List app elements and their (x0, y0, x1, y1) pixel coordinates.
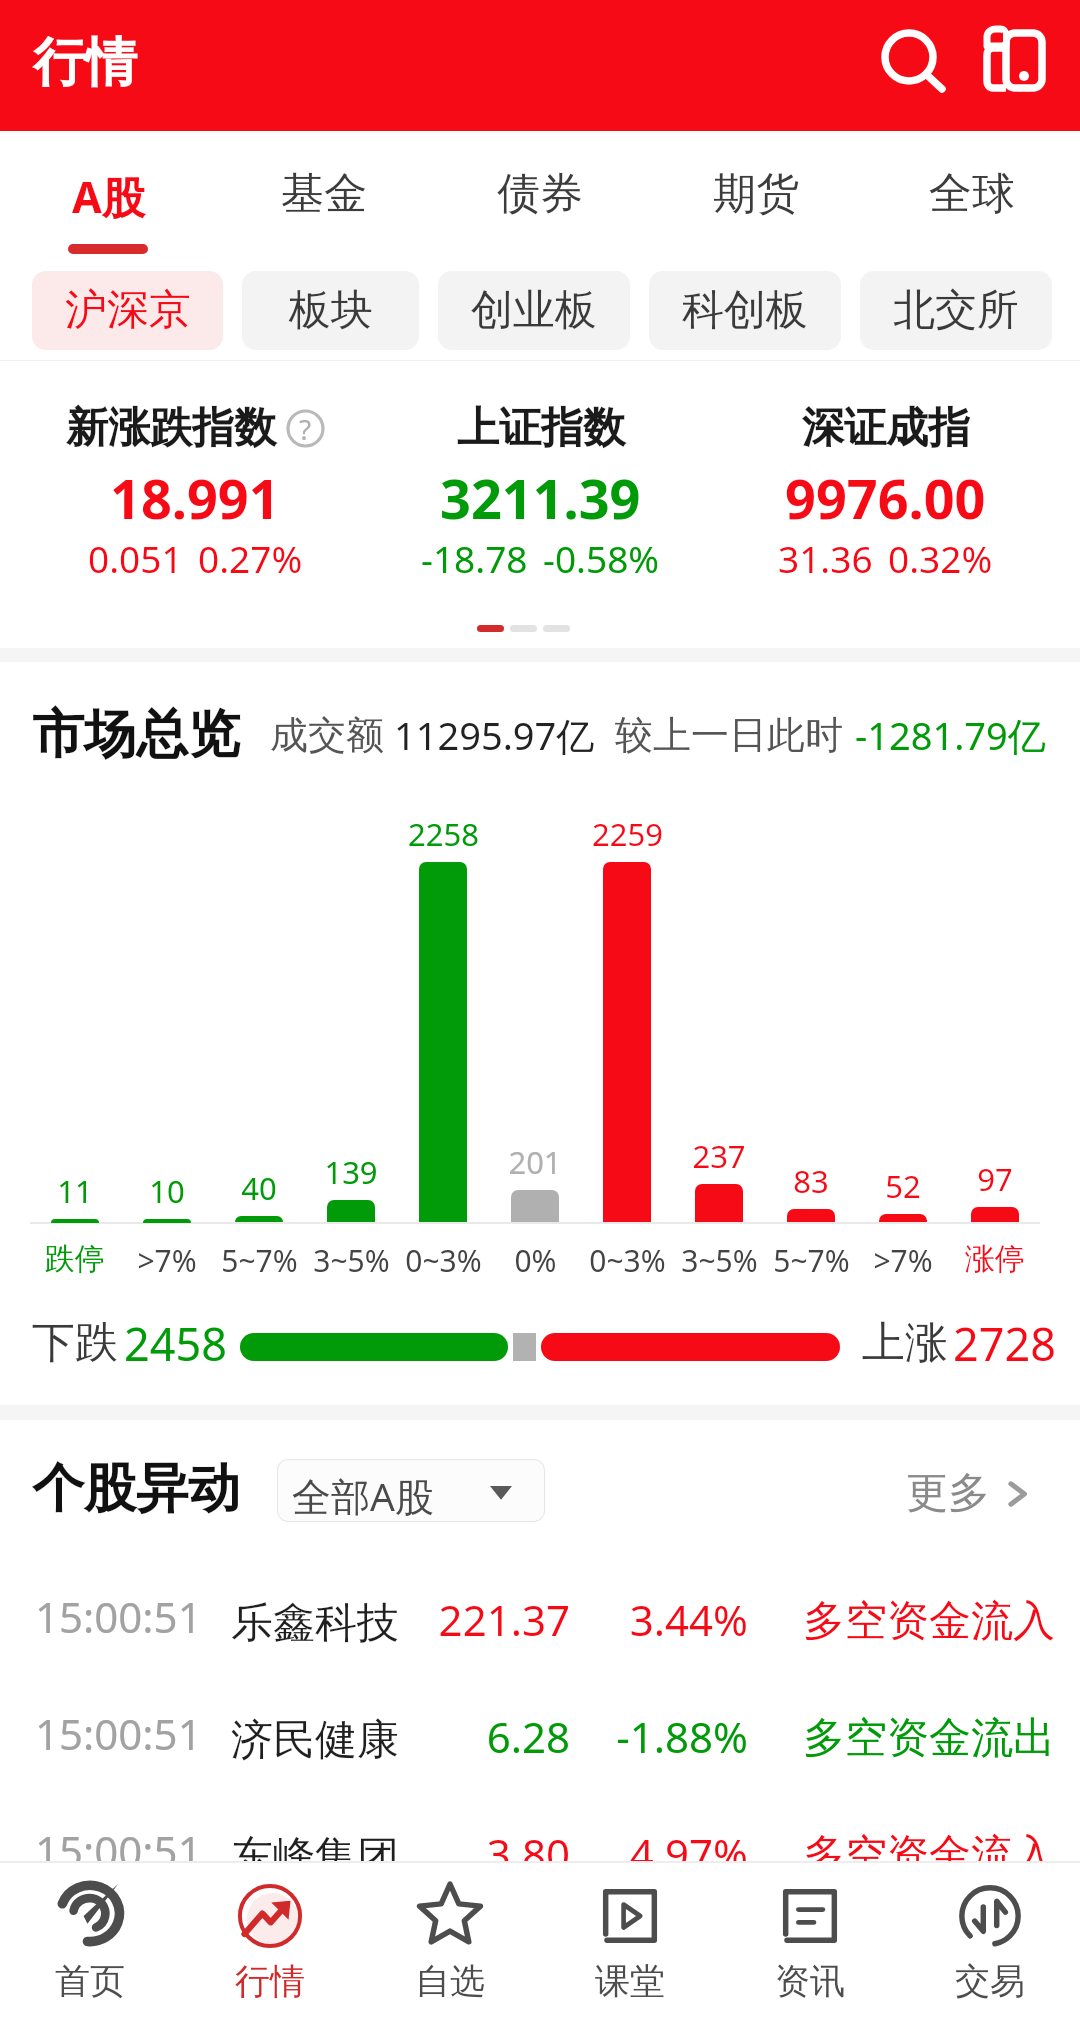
staticText: 创业板 (471, 284, 597, 337)
button[interactable]: A股 (0, 131, 216, 260)
staticText: -1.88% (568, 1708, 748, 1765)
staticText: 2728 (953, 1313, 1056, 1374)
staticText: 多空资金流入 (803, 1595, 1055, 1648)
staticText: 新涨跌指数 (66, 402, 276, 455)
staticText: 全球 (929, 167, 1015, 221)
staticText: 板块 (289, 284, 373, 337)
staticText: 全部A股 (292, 1469, 434, 1522)
staticText: 0.27% (198, 533, 303, 583)
staticText: 83 (793, 1160, 829, 1202)
staticText: 行情 (33, 30, 137, 96)
button[interactable]: 课堂 (540, 1863, 720, 2026)
staticText: 首页 (55, 1959, 125, 2003)
staticText: 0~3% (405, 1240, 482, 1281)
button[interactable]: Stock tools (975, 18, 1055, 98)
staticText: -1281.79亿 (855, 709, 1046, 761)
staticText: -0.58% (543, 533, 660, 583)
button[interactable]: 深证成指 (713, 361, 1058, 591)
staticText: 沪深京 (65, 284, 191, 337)
staticText: >7% (137, 1240, 197, 1281)
staticText: ? (299, 410, 312, 448)
button[interactable]: 科创板 (649, 271, 841, 350)
staticText: 上证指数 (457, 402, 625, 455)
button[interactable]: 基金 (216, 131, 432, 260)
button[interactable]: Search (864, 18, 954, 108)
staticText: 成交额 (270, 711, 384, 759)
staticText: 深证成指 (802, 402, 970, 455)
staticText: 期货 (713, 167, 799, 221)
staticText: 40 (241, 1167, 277, 1209)
staticText: 97 (977, 1158, 1013, 1200)
button[interactable]: 15:00:51 (0, 1564, 1080, 1681)
staticText: 涨停 (965, 1240, 1025, 1278)
staticText: 下跌 (32, 1316, 118, 1370)
staticText: 0.32% (888, 533, 993, 583)
staticText: A股 (72, 167, 145, 226)
staticText: 基金 (281, 167, 367, 221)
button[interactable]: 全球 (864, 131, 1080, 260)
button[interactable]: 新涨跌指数 (22, 361, 368, 591)
staticText: 3.80 (390, 1825, 570, 1882)
button[interactable]: 15:00:51 (0, 1798, 1080, 1915)
staticText: 3.44% (568, 1591, 748, 1648)
staticText: 3211.39 (440, 461, 641, 535)
staticText: 221.37 (390, 1591, 570, 1648)
staticText: 交易 (955, 1959, 1025, 2003)
staticText: 东峰集团 (231, 1831, 399, 1884)
staticText: 5~7% (221, 1240, 298, 1281)
staticText: -18.78 (421, 533, 528, 583)
staticText: 3~5% (681, 1240, 758, 1281)
button[interactable]: 个股异动 (32, 1456, 240, 1522)
staticText: 上涨 (862, 1316, 948, 1370)
button[interactable]: 更多 (906, 1467, 1034, 1520)
button[interactable]: 北交所 (860, 271, 1052, 350)
staticText: 多空资金流出 (803, 1712, 1055, 1765)
staticText: 自选 (415, 1959, 485, 2003)
staticText: 课堂 (595, 1959, 665, 2003)
staticText: 多空资金流入 (803, 1829, 1055, 1882)
staticText: 0% (514, 1240, 557, 1281)
staticText: 市场总览 (32, 702, 240, 768)
button[interactable]: 15:00:51 (0, 1681, 1080, 1798)
staticText: 139 (324, 1151, 378, 1193)
staticText: 15:00:51 (35, 1822, 202, 1879)
staticText: 52 (885, 1165, 921, 1207)
button[interactable]: 全部A股 (277, 1459, 545, 1522)
staticText: 15:00:51 (35, 1705, 202, 1762)
staticText: 11295.97亿 (394, 709, 595, 761)
staticText: 3~5% (313, 1240, 390, 1281)
staticText: 乐鑫科技 (231, 1597, 399, 1650)
button[interactable]: 资讯 (720, 1863, 900, 2026)
staticText: 15:00:51 (35, 1588, 202, 1645)
button[interactable]: 行情 (180, 1863, 360, 2026)
button[interactable]: 交易 (900, 1863, 1080, 2026)
button[interactable]: 沪深京 (32, 271, 223, 350)
button[interactable]: 债券 (432, 131, 648, 260)
button[interactable]: 首页 (0, 1863, 180, 2026)
staticText: 201 (508, 1141, 562, 1183)
staticText: 债券 (497, 167, 583, 221)
staticText: 4.97% (568, 1825, 748, 1882)
button[interactable]: 上证指数 (368, 361, 713, 591)
button[interactable]: 期货 (648, 131, 864, 260)
staticText: 行情 (235, 1959, 305, 2003)
staticText: 2258 (408, 813, 479, 855)
button[interactable]: 创业板 (438, 271, 630, 350)
staticText: 跌停 (45, 1240, 105, 1278)
staticText: 0~3% (589, 1240, 666, 1281)
staticText: 9976.00 (785, 461, 986, 535)
staticText: 18.991 (110, 461, 280, 535)
staticText: 2458 (124, 1313, 227, 1374)
staticText: 10 (149, 1170, 185, 1212)
staticText: 0.051 (88, 533, 183, 583)
staticText: 较上一日此时 (615, 711, 843, 759)
staticText: >7% (873, 1240, 933, 1281)
staticText: 6.28 (390, 1708, 570, 1765)
staticText: 5~7% (773, 1240, 850, 1281)
staticText: 11 (57, 1170, 93, 1212)
staticText: 科创板 (682, 284, 808, 337)
staticText: 31.36 (778, 533, 873, 583)
staticText: 济民健康 (231, 1714, 399, 1767)
button[interactable]: 自选 (360, 1863, 540, 2026)
button[interactable]: 板块 (242, 271, 419, 350)
